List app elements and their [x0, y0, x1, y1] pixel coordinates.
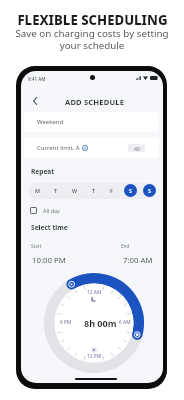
staticText: T — [92, 187, 96, 194]
staticText: Save on charging costs by setting your s… — [15, 27, 169, 52]
button[interactable]: ADD SCHEDULE — [65, 97, 125, 107]
button[interactable]: F — [105, 184, 118, 197]
button[interactable]: Back — [28, 94, 42, 108]
staticText: End — [121, 243, 130, 249]
staticText: All day — [43, 207, 60, 214]
staticText: 7:00 AM — [123, 255, 153, 266]
staticText: Select time — [31, 223, 68, 232]
staticText: S — [148, 187, 151, 194]
staticText: F — [110, 187, 113, 194]
button[interactable]: S — [124, 184, 137, 197]
staticText: W — [72, 187, 78, 194]
button[interactable]: 40 — [128, 144, 145, 152]
staticText: Start — [31, 243, 42, 249]
staticText: 9:41 AM — [28, 76, 46, 82]
staticText: 12 PM — [87, 353, 102, 360]
staticText: 6 AM — [119, 319, 131, 326]
button[interactable]: Weekend — [24, 112, 159, 132]
staticText: T — [54, 187, 58, 194]
staticText: 6 PM — [60, 319, 72, 326]
button[interactable]: S — [143, 184, 156, 197]
staticText: Current limit, A — [37, 144, 80, 152]
staticText: M — [35, 187, 40, 194]
staticText: 8h 00m — [84, 317, 117, 329]
button[interactable]: Current limit, A — [24, 137, 159, 158]
button[interactable]: W — [68, 184, 81, 197]
button[interactable]: M — [31, 184, 44, 197]
staticText: 10:00 PM — [32, 255, 66, 266]
staticText: 40 — [134, 145, 140, 152]
staticText: FLEXIBLE SCHEDULING — [17, 11, 168, 29]
button[interactable]: T — [87, 184, 100, 197]
button[interactable]: T — [49, 184, 62, 197]
staticText: 12 AM — [87, 289, 102, 296]
staticText: Weekend — [37, 118, 64, 126]
staticText: ADD SCHEDULE — [65, 97, 125, 107]
button[interactable]: All day — [30, 207, 60, 214]
staticText: Repeat — [31, 167, 55, 176]
staticText: S — [129, 187, 132, 194]
